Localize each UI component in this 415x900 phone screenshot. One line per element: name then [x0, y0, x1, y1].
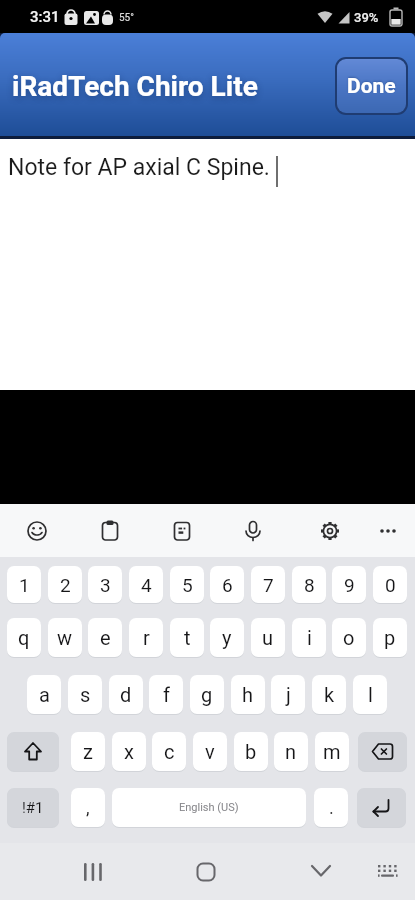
button[interactable] [88, 509, 132, 553]
staticText: 0 [385, 574, 396, 596]
staticText: e [100, 626, 111, 649]
button[interactable]: q [7, 618, 41, 657]
staticText: f [163, 683, 170, 706]
staticText: q [18, 626, 30, 649]
button[interactable]: 0 [373, 566, 407, 603]
button[interactable]: j [271, 675, 305, 714]
staticText: 39% [354, 10, 379, 25]
button[interactable]: 8 [292, 566, 326, 603]
button[interactable]: English (US) [112, 788, 306, 827]
button[interactable]: w [48, 618, 82, 657]
button[interactable]: 3 [88, 566, 122, 603]
button[interactable]: x [112, 732, 146, 771]
staticText: r [143, 626, 150, 649]
button[interactable]: t [170, 618, 204, 657]
button[interactable]: y [210, 618, 244, 657]
staticText: 7 [263, 574, 274, 596]
staticText: d [120, 683, 132, 706]
button[interactable] [231, 509, 275, 553]
staticText: 9 [344, 574, 355, 596]
staticText: o [343, 626, 355, 649]
staticText: z [83, 740, 93, 763]
button[interactable] [160, 509, 204, 553]
staticText: t [184, 626, 191, 649]
button[interactable] [358, 732, 407, 771]
button[interactable]: e [88, 618, 122, 657]
staticText: u [262, 626, 274, 649]
staticText: !#1 [22, 799, 44, 817]
button[interactable]: 6 [210, 566, 244, 603]
button[interactable]: 4 [129, 566, 163, 603]
button[interactable]: b [234, 732, 268, 771]
staticText: iRadTech Chiro Lite [12, 70, 258, 103]
button[interactable]: . [314, 788, 348, 827]
button[interactable] [357, 788, 406, 827]
button[interactable]: m [315, 732, 349, 771]
staticText: 8 [304, 574, 315, 596]
staticText: Note for AP axial C Spine. [8, 154, 270, 181]
button[interactable]: o [332, 618, 366, 657]
button[interactable] [362, 846, 414, 898]
button[interactable]: 7 [251, 566, 285, 603]
staticText: n [285, 740, 297, 763]
button[interactable] [0, 139, 415, 390]
button[interactable] [180, 846, 232, 898]
staticText: 55° [119, 12, 134, 24]
staticText: y [222, 626, 232, 649]
button[interactable] [15, 509, 59, 553]
staticText: w [57, 626, 73, 649]
button[interactable]: r [129, 618, 163, 657]
button[interactable] [295, 846, 347, 898]
button[interactable]: h [231, 675, 265, 714]
staticText: s [80, 683, 91, 706]
button[interactable]: 2 [48, 566, 82, 603]
staticText: , [86, 797, 90, 818]
staticText: a [39, 683, 50, 706]
staticText: 6 [222, 574, 233, 596]
staticText: 5 [182, 574, 193, 596]
staticText: Done [347, 74, 396, 99]
button[interactable]: g [190, 675, 224, 714]
button[interactable]: l [353, 675, 387, 714]
button[interactable]: d [109, 675, 143, 714]
staticText: 4 [141, 574, 152, 596]
button[interactable]: 5 [170, 566, 204, 603]
staticText: h [242, 683, 254, 706]
staticText: b [245, 740, 257, 763]
staticText: x [124, 740, 134, 763]
staticText: i [307, 626, 312, 649]
button[interactable]: s [68, 675, 102, 714]
button[interactable]: a [27, 675, 61, 714]
button[interactable]: i [292, 618, 326, 657]
button[interactable] [66, 846, 118, 898]
staticText: g [201, 683, 213, 706]
staticText: m [323, 740, 341, 763]
staticText: c [164, 740, 175, 763]
button[interactable]: f [149, 675, 183, 714]
staticText: . [329, 797, 334, 818]
button[interactable]: z [71, 732, 105, 771]
button[interactable]: 9 [332, 566, 366, 603]
staticText: v [205, 740, 215, 763]
button[interactable]: Done [335, 57, 408, 115]
staticText: 1 [19, 574, 30, 596]
button[interactable]: c [152, 732, 186, 771]
staticText: 3 [100, 574, 111, 596]
button[interactable] [366, 509, 410, 553]
button[interactable]: v [193, 732, 227, 771]
staticText: English (US) [179, 801, 239, 814]
staticText: 2 [60, 574, 71, 596]
button[interactable]: p [373, 618, 407, 657]
button[interactable] [308, 509, 352, 553]
button[interactable]: 1 [7, 566, 41, 603]
staticText: 3:31 [30, 8, 60, 26]
button[interactable]: n [274, 732, 308, 771]
staticText: p [384, 626, 396, 649]
button[interactable]: u [251, 618, 285, 657]
button[interactable]: !#1 [7, 788, 59, 827]
button[interactable]: k [312, 675, 346, 714]
button[interactable]: , [71, 788, 105, 827]
staticText: k [324, 683, 335, 706]
button[interactable] [7, 732, 59, 771]
staticText: j [286, 683, 291, 706]
